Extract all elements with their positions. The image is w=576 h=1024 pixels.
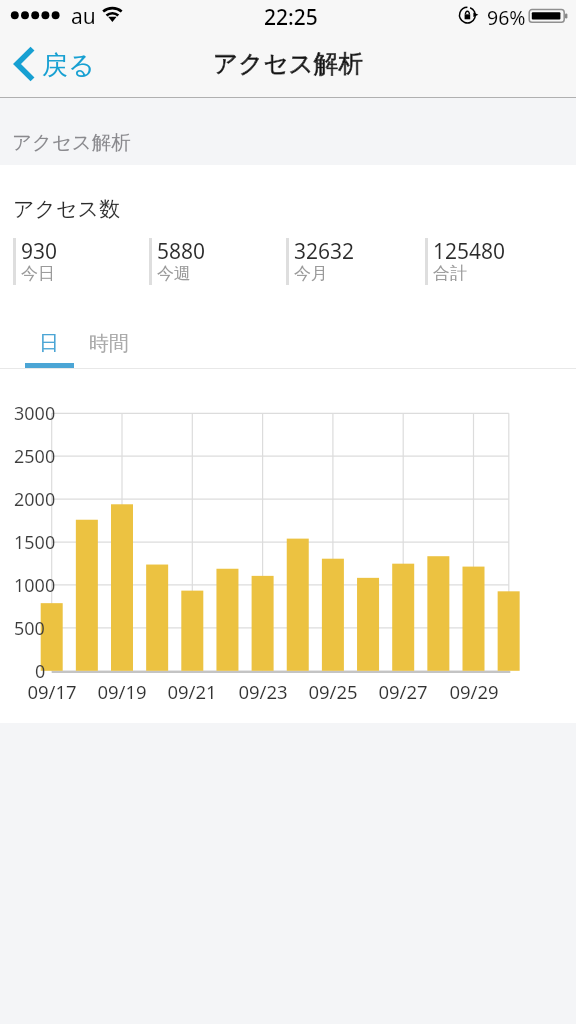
staticText: 2000 <box>14 487 56 512</box>
staticText: 時間 <box>89 331 129 356</box>
staticText: 1500 <box>14 530 56 555</box>
staticText: 日 <box>39 331 59 356</box>
staticText: アクセス数 <box>13 196 120 222</box>
staticText: アクセス解析 <box>213 48 363 79</box>
staticText: 09/27 <box>368 679 438 704</box>
staticText: 5880 <box>157 237 206 266</box>
staticText: 0 <box>35 659 46 684</box>
button[interactable]: 日 <box>24 331 74 373</box>
staticText: 32632 <box>294 237 355 266</box>
staticText: 戻る <box>42 49 95 82</box>
button[interactable]: 32632 <box>286 238 422 286</box>
staticText: 500 <box>14 616 45 641</box>
staticText: 09/19 <box>87 679 157 704</box>
staticText: アクセス解析 <box>12 130 131 155</box>
button[interactable]: 5880 <box>149 238 285 286</box>
staticText: 1000 <box>14 573 56 598</box>
staticText: 09/23 <box>228 679 298 704</box>
button[interactable]: 時間 <box>84 331 134 373</box>
staticText: 3000 <box>14 401 56 426</box>
button[interactable]: 125480 <box>425 238 561 286</box>
staticText: 合計 <box>433 263 467 282</box>
staticText: 96% <box>487 4 526 31</box>
staticText: au <box>71 2 96 31</box>
staticText: 09/29 <box>439 679 509 704</box>
staticText: 09/17 <box>17 679 87 704</box>
staticText: 09/25 <box>298 679 368 704</box>
staticText: 930 <box>21 237 58 266</box>
button[interactable]: 930 <box>13 238 149 286</box>
staticText: 今週 <box>157 263 191 282</box>
button[interactable]: 戻る <box>6 43 102 93</box>
staticText: 125480 <box>433 237 506 266</box>
staticText: 09/21 <box>157 679 227 704</box>
staticText: 22:25 <box>264 3 318 32</box>
staticText: 2500 <box>14 444 56 469</box>
staticText: 今月 <box>294 263 328 282</box>
staticText: アクセス解析 <box>213 48 363 79</box>
staticText: 今日 <box>21 263 55 282</box>
